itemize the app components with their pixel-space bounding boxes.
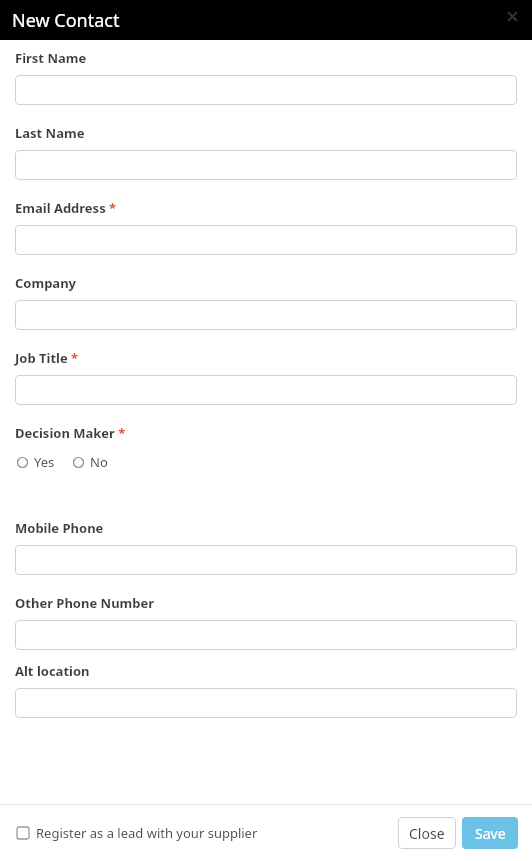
button[interactable]: Yes [17, 453, 55, 471]
button[interactable] [15, 225, 517, 255]
button[interactable] [15, 375, 517, 405]
button[interactable] [15, 688, 517, 718]
staticText: New Contact [12, 8, 120, 33]
staticText: Yes [34, 453, 55, 471]
staticText: Email Address * [15, 199, 117, 217]
staticText: Other Phone Number [15, 594, 155, 612]
staticText: No [90, 453, 108, 471]
button[interactable]: Close [398, 817, 456, 849]
button[interactable] [15, 150, 517, 180]
staticText: Job Title * [15, 349, 79, 367]
staticText: Close [409, 824, 445, 843]
button[interactable]: Save [462, 817, 518, 849]
staticText: Decision Maker * [15, 424, 126, 442]
staticText: Mobile Phone [15, 519, 104, 537]
staticText: First Name [15, 49, 87, 67]
button[interactable]: Register as a lead with your supplier [17, 824, 258, 842]
staticText: Register as a lead with your supplier [36, 824, 258, 842]
button[interactable] [15, 620, 517, 650]
staticText: Save [475, 824, 506, 843]
button[interactable]: No [73, 453, 108, 471]
staticText: Company [15, 274, 77, 292]
button[interactable] [15, 300, 517, 330]
staticText: Alt location [15, 662, 90, 680]
button[interactable] [15, 75, 517, 105]
button[interactable] [15, 545, 517, 575]
staticText: Last Name [15, 124, 85, 142]
button[interactable]: Close [498, 2, 526, 30]
